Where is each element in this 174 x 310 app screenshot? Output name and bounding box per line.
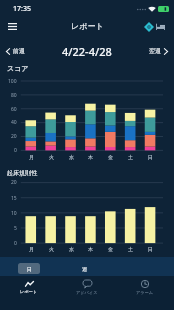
- staticText: 木: [88, 246, 93, 252]
- staticText: 5: [14, 225, 17, 232]
- staticText: 100: [8, 78, 17, 85]
- staticText: 木: [88, 154, 93, 160]
- button[interactable]: アドバイス: [58, 276, 116, 298]
- staticText: 土: [128, 246, 133, 252]
- staticText: 前週: [13, 47, 25, 55]
- staticText: 4/22-4/28: [62, 44, 112, 59]
- staticText: レポート: [20, 289, 38, 294]
- staticText: 日: [148, 246, 153, 252]
- staticText: 水: [69, 246, 74, 252]
- staticText: 60: [11, 106, 17, 113]
- staticText: 金: [108, 246, 113, 252]
- staticText: 10: [11, 210, 17, 217]
- staticText: 金: [108, 154, 113, 160]
- button[interactable]: Sync: [140, 18, 157, 35]
- staticText: 日: [148, 154, 153, 160]
- staticText: アラーム: [136, 290, 154, 295]
- staticText: 0: [14, 240, 17, 247]
- button[interactable]: 翌週: [145, 44, 174, 58]
- button[interactable]: 週: [73, 263, 95, 274]
- staticText: 20: [11, 133, 17, 140]
- staticText: 月: [29, 246, 34, 252]
- staticText: アドバイス: [76, 290, 98, 295]
- staticText: 週: [82, 266, 87, 272]
- staticText: 水: [69, 154, 74, 160]
- button[interactable]: 日: [18, 263, 40, 274]
- staticText: 火: [49, 154, 54, 160]
- button[interactable]: レポート: [0, 276, 58, 298]
- staticText: 火: [49, 246, 54, 252]
- button[interactable]: Menu: [4, 18, 21, 35]
- staticText: 20: [11, 179, 17, 186]
- button[interactable]: 前週: [0, 44, 29, 58]
- staticText: 17:35: [13, 4, 31, 14]
- button[interactable]: Sleep: [152, 18, 169, 35]
- staticText: 80: [11, 92, 17, 99]
- staticText: スコア: [7, 64, 29, 73]
- staticText: 翌週: [149, 47, 161, 55]
- staticText: 起床規則性: [7, 169, 37, 177]
- staticText: 15: [11, 195, 17, 202]
- staticText: 0: [14, 147, 17, 154]
- button[interactable]: アラーム: [116, 276, 174, 298]
- staticText: レポート: [71, 21, 104, 31]
- staticText: 40: [11, 119, 17, 126]
- staticText: 土: [128, 154, 133, 160]
- staticText: 月: [29, 154, 34, 160]
- staticText: 日: [27, 266, 32, 272]
